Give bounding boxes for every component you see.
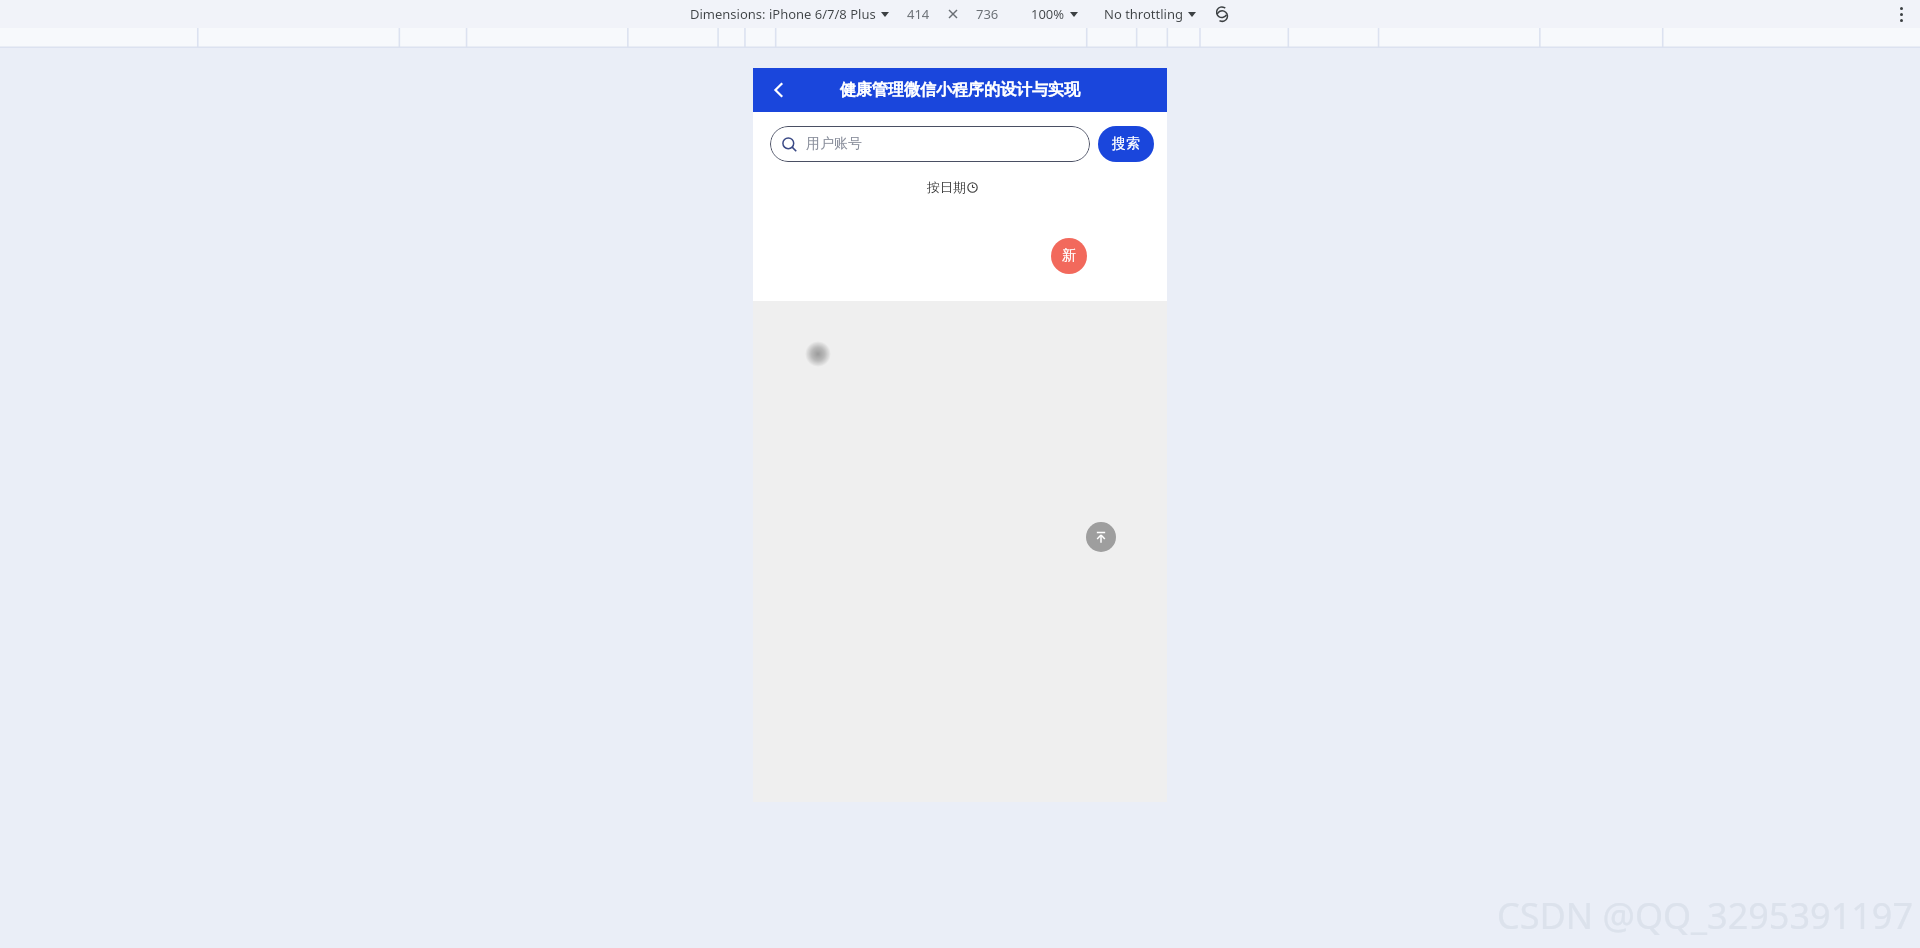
button[interactable]: 搜索 [1098, 126, 1154, 162]
button[interactable]: 按日期 [921, 175, 984, 199]
button[interactable]: 新 [1051, 238, 1087, 274]
staticText: 用户账号 [806, 135, 862, 153]
staticText: 414 [907, 5, 930, 23]
staticText: Dimensions: iPhone 6/7/8 Plus [690, 5, 876, 23]
staticText: No throttling [1104, 5, 1183, 23]
staticText: 健康管理微信小程序的设计与实现 [840, 80, 1080, 100]
staticText: CSDN @QQ_3295391197 [1497, 891, 1914, 940]
button[interactable]: Rotate [1212, 4, 1232, 24]
button[interactable]: 414 [907, 5, 930, 23]
staticText: 搜索 [1112, 135, 1140, 153]
staticText: 736 [976, 5, 999, 23]
button[interactable]: Scroll to top [1086, 522, 1116, 552]
staticText: 新 [1062, 247, 1076, 265]
button[interactable]: 用户账号 [770, 126, 1090, 162]
button[interactable]: 100% [1029, 5, 1080, 23]
staticText: 按日期 [927, 179, 966, 195]
button[interactable]: No throttling [1102, 5, 1198, 23]
staticText: 100% [1031, 5, 1065, 23]
button[interactable]: More options [1890, 3, 1912, 25]
button[interactable]: Back [761, 72, 797, 108]
button[interactable]: 736 [976, 5, 999, 23]
button[interactable]: Dimensions: iPhone 6/7/8 Plus [688, 5, 891, 23]
